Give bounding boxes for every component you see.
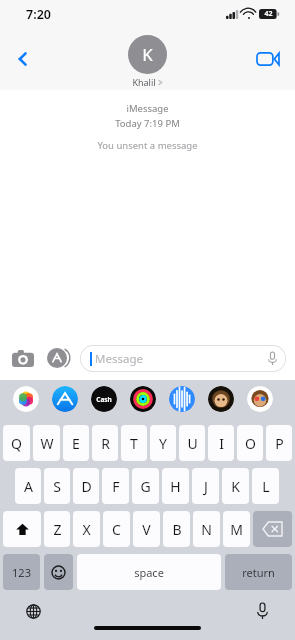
staticText: M [230, 520, 243, 539]
staticText: Message [95, 351, 143, 367]
button[interactable]: audio [169, 386, 195, 412]
staticText: O [245, 434, 256, 453]
button[interactable]: D [73, 468, 99, 504]
staticText: A [24, 477, 33, 496]
staticText: W [40, 434, 54, 453]
staticText: L [262, 477, 270, 496]
button[interactable]: Backspace [253, 511, 292, 547]
staticText: V [142, 520, 151, 539]
staticText: return [242, 565, 275, 580]
staticText: C [112, 520, 121, 539]
button[interactable]: K [222, 468, 249, 504]
button[interactable]: H [162, 468, 189, 504]
staticText: R [101, 434, 110, 453]
button[interactable]: Y [150, 425, 176, 461]
staticText: G [140, 477, 151, 496]
staticText: Y [159, 434, 167, 453]
button[interactable]: X [73, 511, 100, 547]
button[interactable]: fitness [130, 386, 156, 412]
button[interactable]: O [237, 425, 263, 461]
button[interactable]: Back [6, 42, 40, 76]
button[interactable]: R [92, 425, 118, 461]
button[interactable]: E [63, 425, 89, 461]
staticText: K [142, 43, 153, 66]
button[interactable]: V [133, 511, 160, 547]
staticText: I [219, 434, 224, 453]
staticText: 7:20 [26, 6, 51, 23]
staticText: U [187, 434, 198, 453]
staticText: B [172, 520, 182, 539]
staticText: P [275, 434, 284, 453]
staticText: J [204, 477, 208, 496]
staticText: E [72, 434, 80, 453]
staticText: iMessage [126, 102, 169, 115]
button[interactable]: S [44, 468, 70, 504]
button[interactable]: N [193, 511, 220, 547]
staticText: D [81, 477, 92, 496]
staticText: Today 7:19 PM [115, 117, 180, 130]
button[interactable]: Change keyboard [22, 600, 44, 622]
button[interactable]: W [33, 425, 60, 461]
button[interactable]: space [77, 554, 221, 590]
button[interactable]: memoji1 [208, 386, 234, 412]
staticText: You unsent a message [97, 139, 198, 152]
staticText: T [130, 434, 138, 453]
button[interactable]: Message [80, 345, 286, 372]
staticText: K [231, 477, 240, 496]
button[interactable]: Numbers [3, 554, 40, 590]
button[interactable]: B [163, 511, 190, 547]
staticText: Cash [96, 395, 112, 404]
button[interactable]: I [208, 425, 234, 461]
staticText: H [170, 477, 181, 496]
staticText: F [112, 477, 120, 496]
staticText: N [201, 520, 212, 539]
button[interactable]: C [103, 511, 130, 547]
button[interactable]: M [223, 511, 250, 547]
button[interactable]: cash [91, 386, 117, 412]
button[interactable]: return [225, 554, 292, 590]
staticText: 42 [264, 9, 273, 19]
button[interactable]: Z [44, 511, 70, 547]
button[interactable]: Q [3, 425, 30, 461]
button[interactable]: A [15, 468, 41, 504]
staticText: Z [53, 520, 62, 539]
button[interactable]: Apps [44, 344, 72, 372]
button[interactable]: T [121, 425, 147, 461]
button[interactable]: K [128, 35, 167, 88]
button[interactable]: FaceTime video call [251, 42, 285, 76]
button[interactable]: P [266, 425, 292, 461]
staticText: space [134, 565, 164, 580]
button[interactable]: Shift [3, 511, 41, 547]
button[interactable]: L [252, 468, 279, 504]
staticText: S [53, 477, 61, 496]
button[interactable]: memoji2 [247, 386, 273, 412]
staticText: 123 [12, 565, 31, 580]
staticText: Q [11, 434, 22, 453]
button[interactable]: Emoji [44, 554, 73, 590]
button[interactable]: F [102, 468, 129, 504]
button[interactable]: Dictate [251, 600, 273, 622]
staticText: X [82, 520, 91, 539]
button[interactable]: U [179, 425, 205, 461]
button[interactable]: photos [13, 386, 39, 412]
button[interactable]: J [192, 468, 219, 504]
button[interactable]: Camera [9, 344, 37, 372]
button[interactable]: G [132, 468, 159, 504]
staticText: Khalil [132, 76, 156, 88]
button[interactable]: appstore [52, 386, 78, 412]
